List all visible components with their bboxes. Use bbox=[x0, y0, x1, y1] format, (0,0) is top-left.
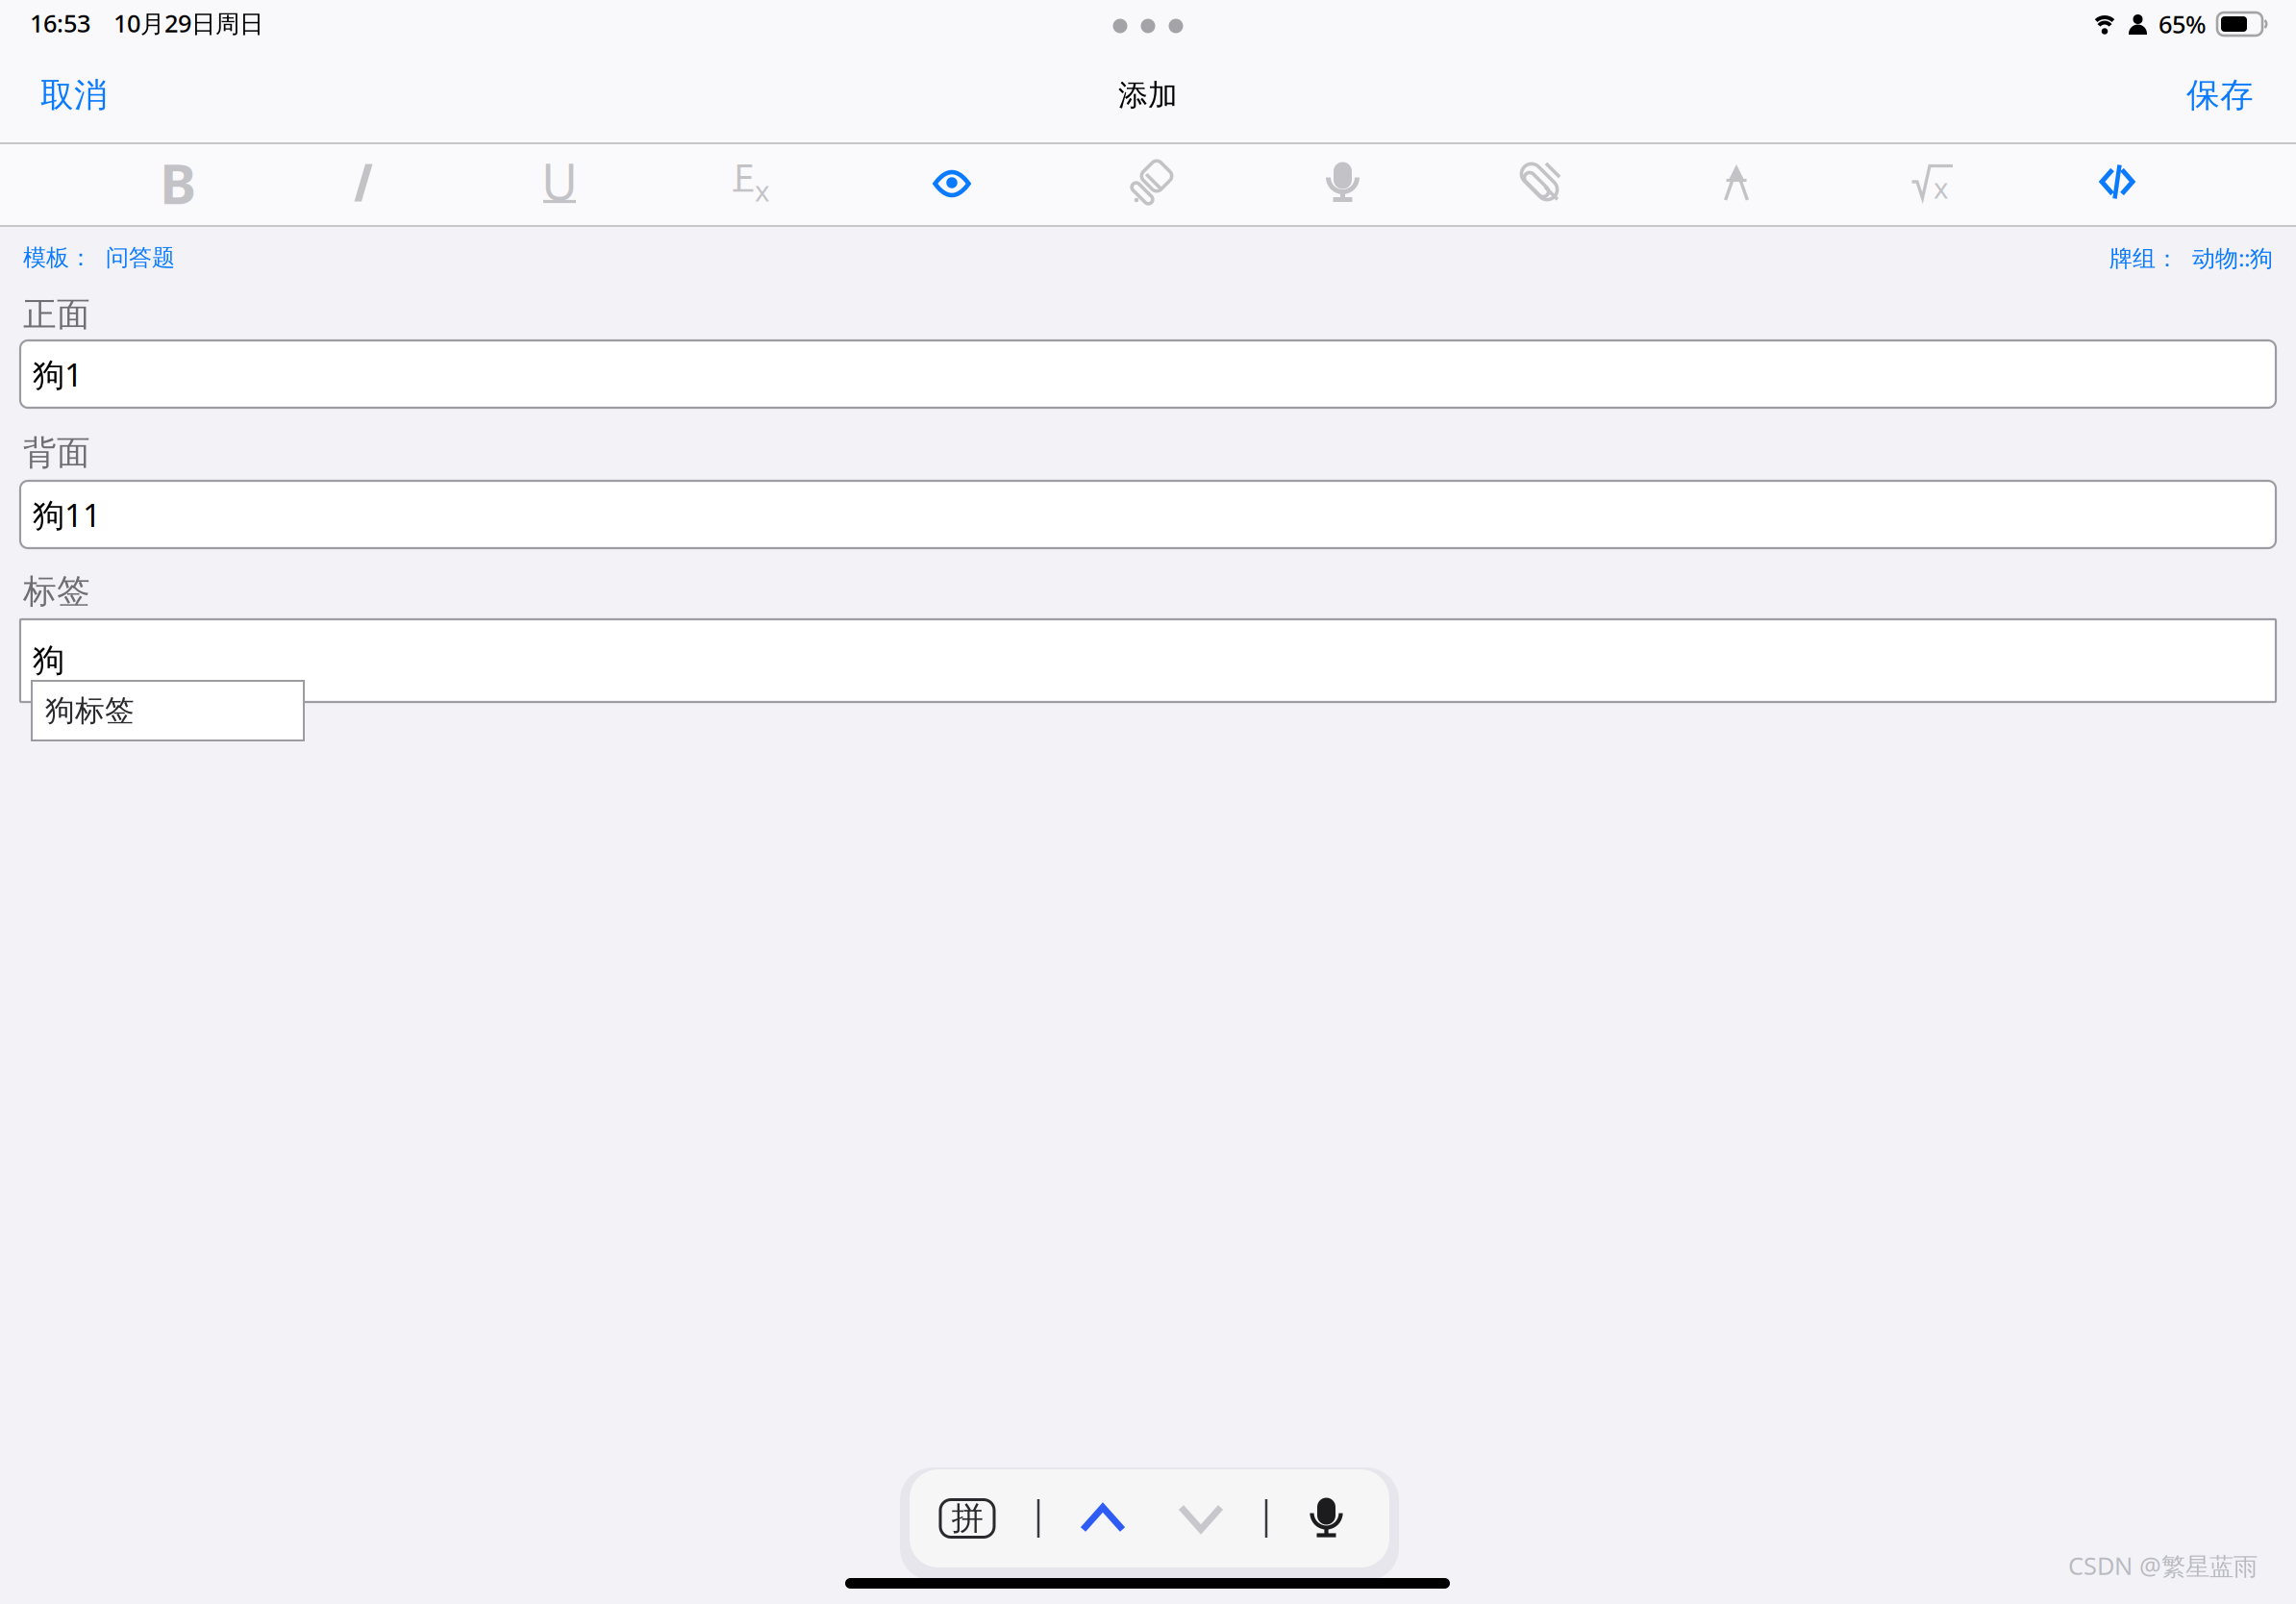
button[interactable]: Record audio bbox=[1271, 142, 1415, 223]
staticText: 保存 bbox=[2186, 75, 2254, 116]
staticText: 16:53 bbox=[30, 7, 90, 39]
button[interactable]: Dictate bbox=[1289, 1482, 1364, 1555]
staticText: 拼 bbox=[951, 1499, 983, 1538]
button[interactable]: Underline bbox=[487, 142, 632, 223]
button[interactable]: Next field bbox=[1157, 1484, 1245, 1553]
staticText: 狗标签 bbox=[45, 693, 135, 729]
button[interactable]: 取消 bbox=[21, 75, 194, 116]
staticText: 正面 bbox=[23, 294, 90, 335]
staticText: 背面 bbox=[23, 432, 90, 473]
staticText: 65% bbox=[2159, 8, 2207, 40]
staticText: 取消 bbox=[40, 75, 108, 116]
button[interactable]: Preview bbox=[880, 142, 1024, 223]
staticText: 10月29日周日 bbox=[113, 7, 263, 39]
staticText: 狗11 bbox=[33, 493, 101, 536]
button[interactable]: Clear formatting bbox=[681, 142, 825, 223]
staticText: B bbox=[160, 146, 196, 219]
button[interactable]: Edit HTML bbox=[2046, 142, 2190, 223]
staticText: 狗 bbox=[33, 641, 64, 680]
button[interactable]: Bold bbox=[106, 142, 250, 223]
button[interactable]: Paint bbox=[1077, 142, 1221, 223]
staticText: x bbox=[1934, 169, 1949, 206]
staticText: U bbox=[541, 148, 578, 214]
staticText: x bbox=[755, 172, 770, 209]
button[interactable]: Italic bbox=[291, 142, 436, 223]
button[interactable]: Previous field bbox=[1059, 1484, 1147, 1553]
staticText: CSDN @繁星蓝雨 bbox=[2068, 1549, 2258, 1582]
button[interactable]: Attach media bbox=[1468, 142, 1612, 223]
button[interactable]: Switch input mode bbox=[928, 1485, 1007, 1552]
staticText: F bbox=[734, 151, 753, 201]
button[interactable]: 狗标签 bbox=[32, 681, 304, 740]
staticText: 模板： 问答题 bbox=[23, 244, 175, 272]
staticText: 狗1 bbox=[33, 353, 83, 395]
button[interactable]: Text style bbox=[1665, 142, 1809, 223]
staticText: 添加 bbox=[1118, 77, 1178, 113]
button[interactable]: 牌组： 动物::狗 bbox=[1600, 242, 2273, 273]
staticText: 牌组： 动物::狗 bbox=[2109, 242, 2273, 273]
button[interactable]: 保存 bbox=[2102, 75, 2275, 116]
button[interactable]: Insert equation bbox=[1860, 142, 2005, 223]
button[interactable]: 模板： 问答题 bbox=[23, 244, 696, 272]
staticText: 标签 bbox=[23, 571, 90, 612]
